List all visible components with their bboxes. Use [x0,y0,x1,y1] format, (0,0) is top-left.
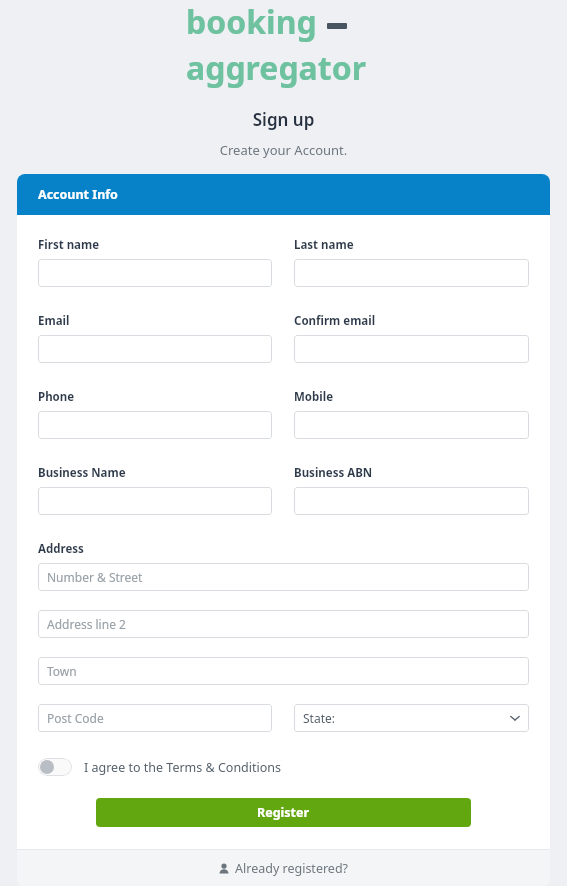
button[interactable] [294,411,529,439]
staticText: booking [186,0,317,44]
staticText: Number & Street [47,569,143,585]
other: Already registered [218,863,230,875]
staticText: Create your Account. [0,141,567,159]
staticText: Business Name [38,465,126,481]
button[interactable] [38,487,272,515]
button[interactable]: I agree to the Terms & Conditions [38,756,282,778]
staticText: Register [257,804,310,821]
staticText: State: [303,710,335,726]
staticText: Confirm email [294,313,376,329]
staticText: aggregator [186,46,366,90]
button[interactable] [294,335,529,363]
staticText: I agree to the Terms & Conditions [84,759,282,776]
staticText: Phone [38,389,75,405]
staticText: Email [38,313,70,329]
button[interactable]: Town [38,657,529,685]
staticText: Town [47,663,77,679]
button[interactable]: Number & Street [38,563,529,591]
button[interactable] [294,487,529,515]
button[interactable] [38,411,272,439]
staticText: Account Info [38,186,118,203]
staticText: Post Code [47,710,104,726]
button[interactable]: Address line 2 [38,610,529,638]
staticText: Mobile [294,389,334,405]
staticText: Last name [294,237,354,253]
staticText: Address line 2 [47,616,126,632]
staticText: Already registered? [235,860,349,877]
button[interactable] [38,259,272,287]
button[interactable]: State: [294,704,529,732]
button[interactable] [294,259,529,287]
staticText: First name [38,237,100,253]
button[interactable]: Post Code [38,704,272,732]
staticText: Sign up [0,108,567,131]
button[interactable] [38,335,272,363]
button[interactable]: Register [96,798,471,827]
staticText: Address [38,541,84,557]
button[interactable]: Already registered [210,856,357,881]
staticText: Business ABN [294,465,373,481]
